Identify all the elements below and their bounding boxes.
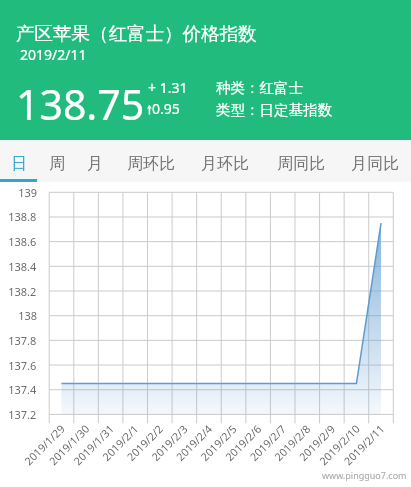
staticText: 日: [11, 154, 27, 174]
staticText: 类型：日定基指数: [216, 101, 332, 119]
button[interactable]: 日: [2, 140, 36, 179]
button[interactable]: 月环比: [192, 140, 258, 179]
staticText: 周: [49, 154, 65, 174]
staticText: 月环比: [201, 154, 249, 174]
staticText: 产区苹果（红富士）价格指数: [16, 22, 257, 45]
staticText: 2019/2/11: [20, 45, 87, 64]
staticText: 138.75: [16, 76, 145, 132]
staticText: 0.95: [152, 99, 180, 118]
button[interactable]: 周同比: [268, 140, 334, 179]
button[interactable]: 周: [40, 140, 74, 179]
staticText: 种类：红富士: [216, 79, 303, 97]
staticText: 月: [87, 154, 103, 174]
button[interactable]: 月同比: [342, 140, 408, 179]
staticText: 月同比: [351, 154, 399, 174]
staticText: 周同比: [277, 154, 325, 174]
staticText: 周环比: [127, 154, 175, 174]
button[interactable]: 周环比: [118, 140, 184, 179]
staticText: + 1.31: [148, 78, 188, 97]
button[interactable]: 月: [78, 140, 112, 179]
